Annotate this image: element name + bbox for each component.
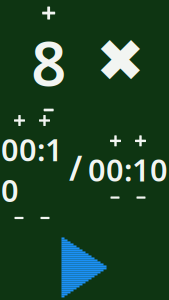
staticText: / [69,146,82,190]
staticText: 8 [31,22,66,103]
button[interactable]: Repetitions [26,7,72,115]
staticText: 00:10 [88,149,168,190]
button[interactable]: Start [39,222,129,300]
staticText: 00:10 [1,129,63,210]
button[interactable]: Work time [1,115,63,222]
button[interactable]: Rest time [88,135,168,202]
button[interactable]: Multiply [97,26,143,96]
staticText: ✖ [96,27,145,94]
